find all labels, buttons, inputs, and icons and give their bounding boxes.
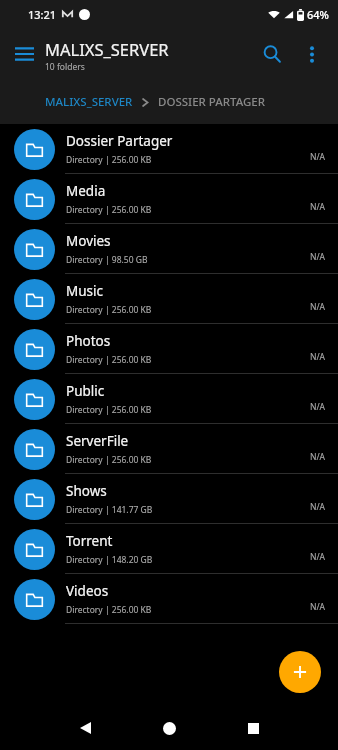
staticText: Photos [66,332,111,350]
button[interactable]: Add [279,651,321,693]
button[interactable]: Shows [0,474,338,524]
staticText: Directory | 256.00 KB [66,454,152,466]
staticText: MALIXS_SERVER [45,94,133,110]
staticText: Directory | 141.77 GB [66,504,153,516]
staticText: N/A [310,351,326,363]
staticText: N/A [310,401,326,413]
button[interactable]: DOSSIER PARTAGER [158,94,266,110]
staticText: N/A [310,551,326,563]
button[interactable]: Media [0,174,338,224]
button[interactable]: Menu [4,34,44,74]
button[interactable]: Back [68,711,102,745]
staticText: Media [66,182,106,200]
button[interactable]: Videos [0,574,338,624]
staticText: N/A [310,601,326,613]
staticText: N/A [310,201,326,213]
button[interactable]: More options [292,34,332,74]
staticText: Directory | 256.00 KB [66,204,152,216]
staticText: Directory | 98.50 GB [66,254,148,266]
staticText: Directory | 256.00 KB [66,354,152,366]
staticText: Torrent [66,532,113,550]
staticText: Shows [66,482,107,500]
staticText: 10 folders [45,61,85,73]
staticText: Music [66,282,104,300]
button[interactable]: Music [0,274,338,324]
staticText: Public [66,382,105,400]
staticText: N/A [310,501,326,513]
staticText: Directory | 256.00 KB [66,154,152,166]
button[interactable]: Dossier Partager [0,124,338,174]
staticText: N/A [310,451,326,463]
button[interactable]: Torrent [0,524,338,574]
staticText: N/A [310,251,326,263]
staticText: Dossier Partager [66,132,173,150]
staticText: N/A [310,301,326,313]
staticText: Movies [66,232,111,250]
button[interactable]: Public [0,374,338,424]
staticText: Directory | 256.00 KB [66,304,152,316]
button[interactable]: Movies [0,224,338,274]
button[interactable]: Photos [0,324,338,374]
staticText: Videos [66,582,109,600]
staticText: Directory | 256.00 KB [66,404,152,416]
staticText: 64% [307,7,329,22]
button[interactable]: Recent apps [236,711,270,745]
staticText: 13:21 [28,7,57,22]
button[interactable]: Search [252,34,292,74]
staticText: DOSSIER PARTAGER [158,94,266,110]
staticText: ServerFile [66,432,129,450]
staticText: Directory | 256.00 KB [66,604,152,616]
staticText: MALIXS_SERVER [45,38,169,60]
staticText: Directory | 148.20 GB [66,554,153,566]
staticText: N/A [310,151,326,163]
button[interactable]: MALIXS_SERVER [45,94,133,110]
button[interactable]: ServerFile [0,424,338,474]
button[interactable]: Home [152,711,186,745]
